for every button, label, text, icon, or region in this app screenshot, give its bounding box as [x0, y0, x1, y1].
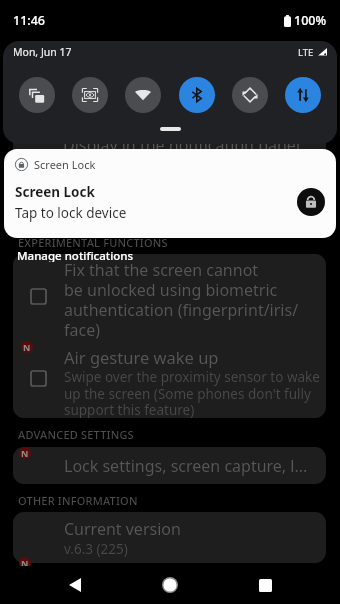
staticText: LTE	[298, 46, 314, 59]
staticText: N	[21, 447, 29, 459]
button[interactable]: Fix that the screen cannot be unlocked u…	[13, 254, 326, 418]
staticText: Fix that the screen cannot be unlocked u…	[64, 259, 299, 340]
staticText: Swipe over the proximity sensor to wake …	[64, 368, 320, 418]
button[interactable]: Recents	[242, 566, 288, 604]
button[interactable]: Current version	[13, 512, 326, 563]
button[interactable]: Manage notifications	[0, 248, 340, 262]
button[interactable]: Screen mirror	[19, 77, 55, 113]
staticText: OTHER INFORMATION	[18, 493, 138, 508]
button[interactable]: Mobile data	[285, 77, 321, 113]
staticText: EXPERIMENTAL FUNCTIONS	[18, 235, 168, 250]
button[interactable]: Back	[52, 566, 98, 604]
staticText: Display in the notification panel	[63, 134, 301, 156]
staticText: ADVANCED SETTINGS	[18, 427, 134, 442]
staticText: Screen Lock	[34, 157, 96, 172]
staticText: Current version	[64, 518, 181, 540]
button[interactable]: Home	[147, 566, 193, 604]
button[interactable]: Auto rotate	[232, 77, 268, 113]
staticText: Manage notifications	[17, 248, 134, 262]
button[interactable]: Bluetooth	[179, 77, 215, 113]
staticText: N	[23, 341, 31, 353]
staticText: Mon, Jun 17	[13, 45, 72, 59]
staticText: Screen Lock	[15, 183, 95, 201]
staticText: v.6.3 (225)	[64, 540, 128, 558]
button[interactable]: Screen Lock	[4, 149, 336, 238]
staticText: 11:46	[13, 12, 46, 29]
staticText: 100%	[294, 12, 327, 29]
button[interactable]: Screen capture	[72, 77, 108, 113]
staticText: Lock settings, screen capture, l...	[64, 455, 308, 477]
staticText: Tap to lock device	[15, 204, 127, 222]
button[interactable]: Wi-Fi	[125, 77, 161, 113]
button[interactable]: Lock settings, screen capture, l...	[13, 447, 326, 484]
staticText: Air gesture wake up	[64, 346, 219, 368]
staticText: N	[21, 557, 29, 569]
